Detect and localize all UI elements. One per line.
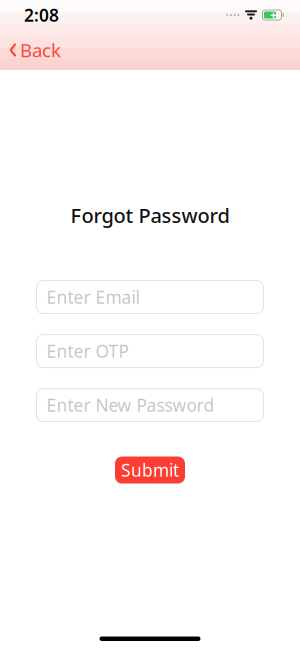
- staticText: Enter OTP: [46, 340, 128, 363]
- staticText: Back: [20, 38, 61, 62]
- staticText: 2:08: [24, 3, 59, 26]
- button[interactable]: Submit: [115, 457, 185, 484]
- staticText: Enter Email: [46, 286, 139, 309]
- staticText: +: [270, 7, 277, 23]
- staticText: Enter New Password: [46, 394, 214, 417]
- staticText: Forgot Password: [70, 202, 229, 229]
- staticText: Submit: [121, 459, 179, 482]
- button[interactable]: Back: [0, 32, 69, 68]
